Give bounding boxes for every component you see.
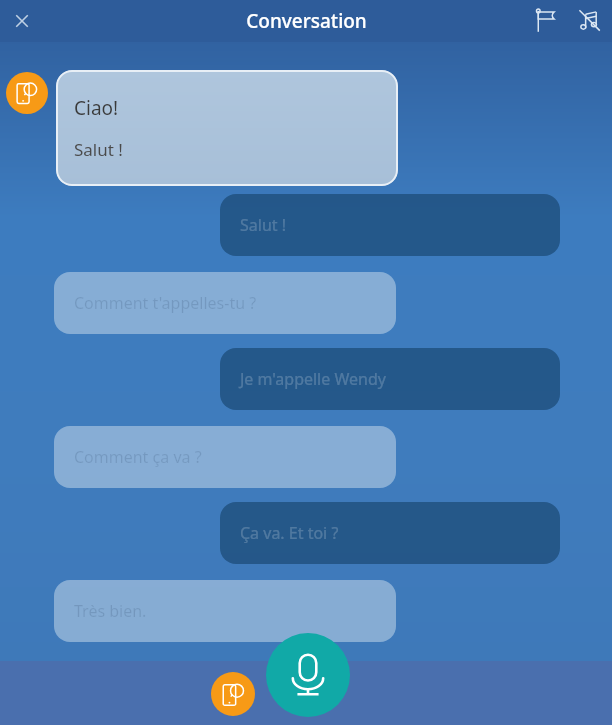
button[interactable]: Comment t'appelles-tu ? bbox=[54, 272, 396, 334]
staticText: Salut ! bbox=[240, 214, 287, 236]
staticText: Comment t'appelles-tu ? bbox=[74, 292, 257, 314]
button[interactable]: Mute sound bbox=[568, 0, 610, 42]
staticText: Salut ! bbox=[74, 138, 123, 161]
button[interactable]: Salut ! bbox=[220, 194, 560, 256]
staticText: Ciao! bbox=[74, 95, 119, 121]
staticText: Conversation bbox=[246, 8, 367, 34]
button[interactable]: Close bbox=[2, 1, 42, 41]
button[interactable]: Très bien. bbox=[54, 580, 396, 642]
button[interactable]: Switch language bbox=[211, 672, 255, 716]
button[interactable]: Ça va. Et toi ? bbox=[220, 502, 560, 564]
staticText: Comment ça va ? bbox=[74, 446, 202, 468]
staticText: Je m'appelle Wendy bbox=[240, 368, 386, 390]
staticText: Très bien. bbox=[74, 600, 147, 622]
button[interactable]: Je m'appelle Wendy bbox=[220, 348, 560, 410]
button[interactable]: Ciao! bbox=[56, 70, 398, 186]
button[interactable]: Report bbox=[524, 0, 566, 42]
staticText: Ça va. Et toi ? bbox=[240, 522, 339, 544]
button[interactable]: Record voice bbox=[266, 633, 350, 717]
button[interactable]: Comment ça va ? bbox=[54, 426, 396, 488]
button[interactable]: Speaker avatar bbox=[6, 72, 48, 114]
